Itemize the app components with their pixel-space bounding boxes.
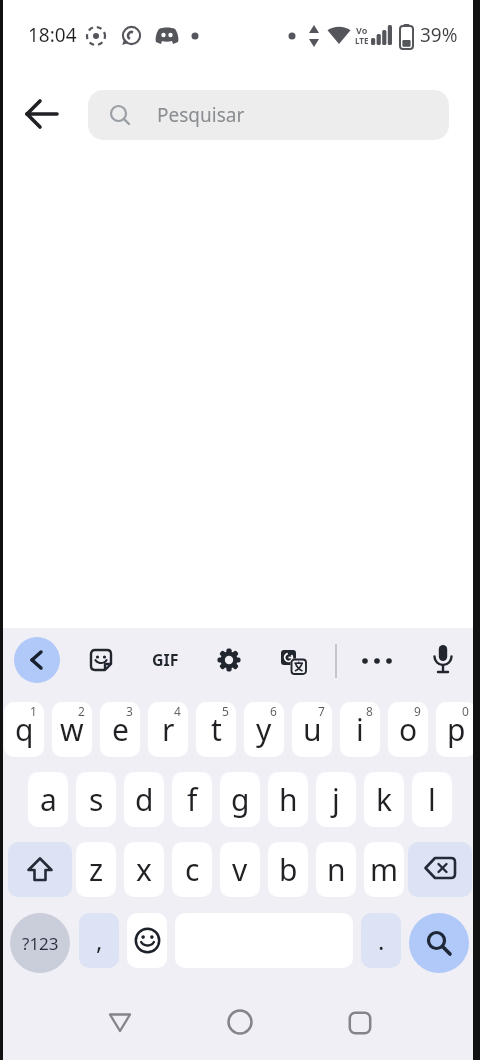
button[interactable] <box>430 644 456 678</box>
staticText: g <box>231 779 250 820</box>
button[interactable]: Pesquisar <box>88 90 449 140</box>
button[interactable]: ?123 <box>10 913 70 973</box>
button[interactable]: s <box>76 772 116 827</box>
staticText: Vo <box>356 24 368 36</box>
button[interactable]: q <box>4 702 44 757</box>
staticText: q <box>15 709 34 750</box>
button[interactable]: r <box>148 702 188 757</box>
staticText: e <box>112 709 129 750</box>
staticText: j <box>332 779 340 820</box>
button[interactable] <box>349 1012 371 1034</box>
staticText: c <box>185 849 200 890</box>
button[interactable]: w <box>52 702 92 757</box>
button[interactable] <box>409 913 469 973</box>
button[interactable] <box>281 650 307 675</box>
staticText: p <box>447 709 466 750</box>
button[interactable] <box>127 913 167 968</box>
staticText: s <box>89 779 104 820</box>
staticText: 2 <box>78 703 85 719</box>
staticText: a <box>40 779 57 820</box>
staticText: GIF <box>152 649 179 671</box>
staticText: d <box>135 779 154 820</box>
button[interactable]: a <box>28 772 68 827</box>
button[interactable] <box>217 648 241 672</box>
button[interactable]: v <box>220 842 260 897</box>
staticText: m <box>370 849 399 890</box>
staticText: u <box>303 709 322 750</box>
button[interactable] <box>89 648 113 672</box>
button[interactable]: p <box>436 702 476 757</box>
staticText: l <box>428 779 436 820</box>
staticText: y <box>256 709 272 750</box>
button[interactable]: d <box>124 772 164 827</box>
staticText: v <box>232 849 248 890</box>
staticText: 6 <box>270 703 277 719</box>
button[interactable]: g <box>220 772 260 827</box>
button[interactable]: j <box>316 772 356 827</box>
staticText: 39% <box>420 22 458 48</box>
button[interactable]: i <box>340 702 380 757</box>
staticText: LTE <box>355 35 369 46</box>
button[interactable] <box>14 637 60 683</box>
staticText: x <box>136 849 152 890</box>
button[interactable]: . <box>361 913 401 968</box>
staticText: b <box>279 849 298 890</box>
staticText: 0 <box>462 703 469 719</box>
button[interactable]: b <box>268 842 308 897</box>
staticText: n <box>327 849 346 890</box>
staticText: . <box>378 924 385 957</box>
button[interactable] <box>108 1012 132 1034</box>
staticText: f <box>187 779 198 820</box>
staticText: k <box>376 779 393 820</box>
staticText: 18:04 <box>28 22 77 48</box>
staticText: 1 <box>30 703 37 719</box>
button[interactable]: t <box>196 702 236 757</box>
staticText: 5 <box>222 703 229 719</box>
staticText: Pesquisar <box>157 102 245 128</box>
staticText: 9 <box>414 703 421 719</box>
staticText: , <box>96 924 103 957</box>
staticText: r <box>162 709 175 750</box>
button[interactable] <box>8 842 72 897</box>
staticText: h <box>279 779 298 820</box>
button[interactable]: y <box>244 702 284 757</box>
staticText: i <box>356 709 364 750</box>
button[interactable]: x <box>124 842 164 897</box>
button[interactable] <box>18 90 66 138</box>
button[interactable] <box>408 842 472 897</box>
button[interactable] <box>359 654 395 668</box>
button[interactable]: e <box>100 702 140 757</box>
staticText: o <box>399 709 418 750</box>
staticText: 3 <box>126 703 133 719</box>
button[interactable]: c <box>172 842 212 897</box>
staticText: w <box>60 709 84 750</box>
button[interactable]: GIF <box>143 648 187 672</box>
button[interactable]: , <box>79 913 119 968</box>
button[interactable] <box>228 1010 252 1034</box>
staticText: 4 <box>174 703 181 719</box>
button[interactable]: n <box>316 842 356 897</box>
button[interactable]: k <box>364 772 404 827</box>
button[interactable]: u <box>292 702 332 757</box>
staticText: t <box>211 709 222 750</box>
button[interactable]: l <box>412 772 452 827</box>
button[interactable]: o <box>388 702 428 757</box>
staticText: 7 <box>318 703 325 719</box>
button[interactable]: h <box>268 772 308 827</box>
staticText: z <box>89 849 104 890</box>
button[interactable]: m <box>364 842 404 897</box>
button[interactable]: z <box>76 842 116 897</box>
staticText: 8 <box>366 703 373 719</box>
button[interactable]: f <box>172 772 212 827</box>
staticText: ?123 <box>22 932 59 955</box>
